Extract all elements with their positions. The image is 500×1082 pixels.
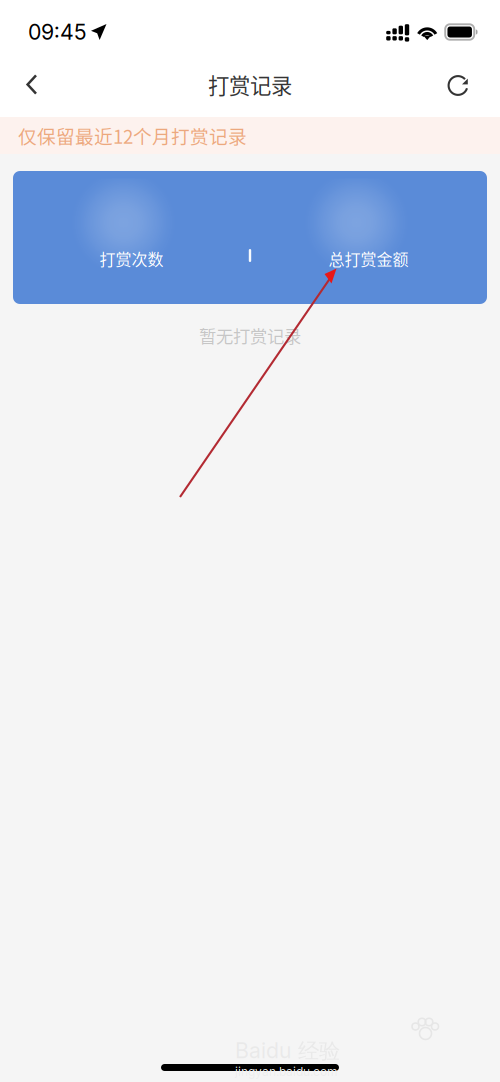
staticText: 09:45 <box>28 19 87 45</box>
staticText: 总打赏金额 <box>328 247 408 270</box>
staticText: 打赏次数 <box>99 247 163 270</box>
button[interactable]: Refresh <box>432 61 484 107</box>
button[interactable]: Back <box>6 61 58 107</box>
staticText: Baidu 经验 <box>235 1037 340 1064</box>
staticText: jingyan.baidu.com <box>235 1064 338 1079</box>
staticText: 暂无打赏记录 <box>199 323 301 348</box>
staticText: 打赏记录 <box>208 69 292 100</box>
staticText: 仅保留最近12个月打赏记录 <box>18 122 247 149</box>
